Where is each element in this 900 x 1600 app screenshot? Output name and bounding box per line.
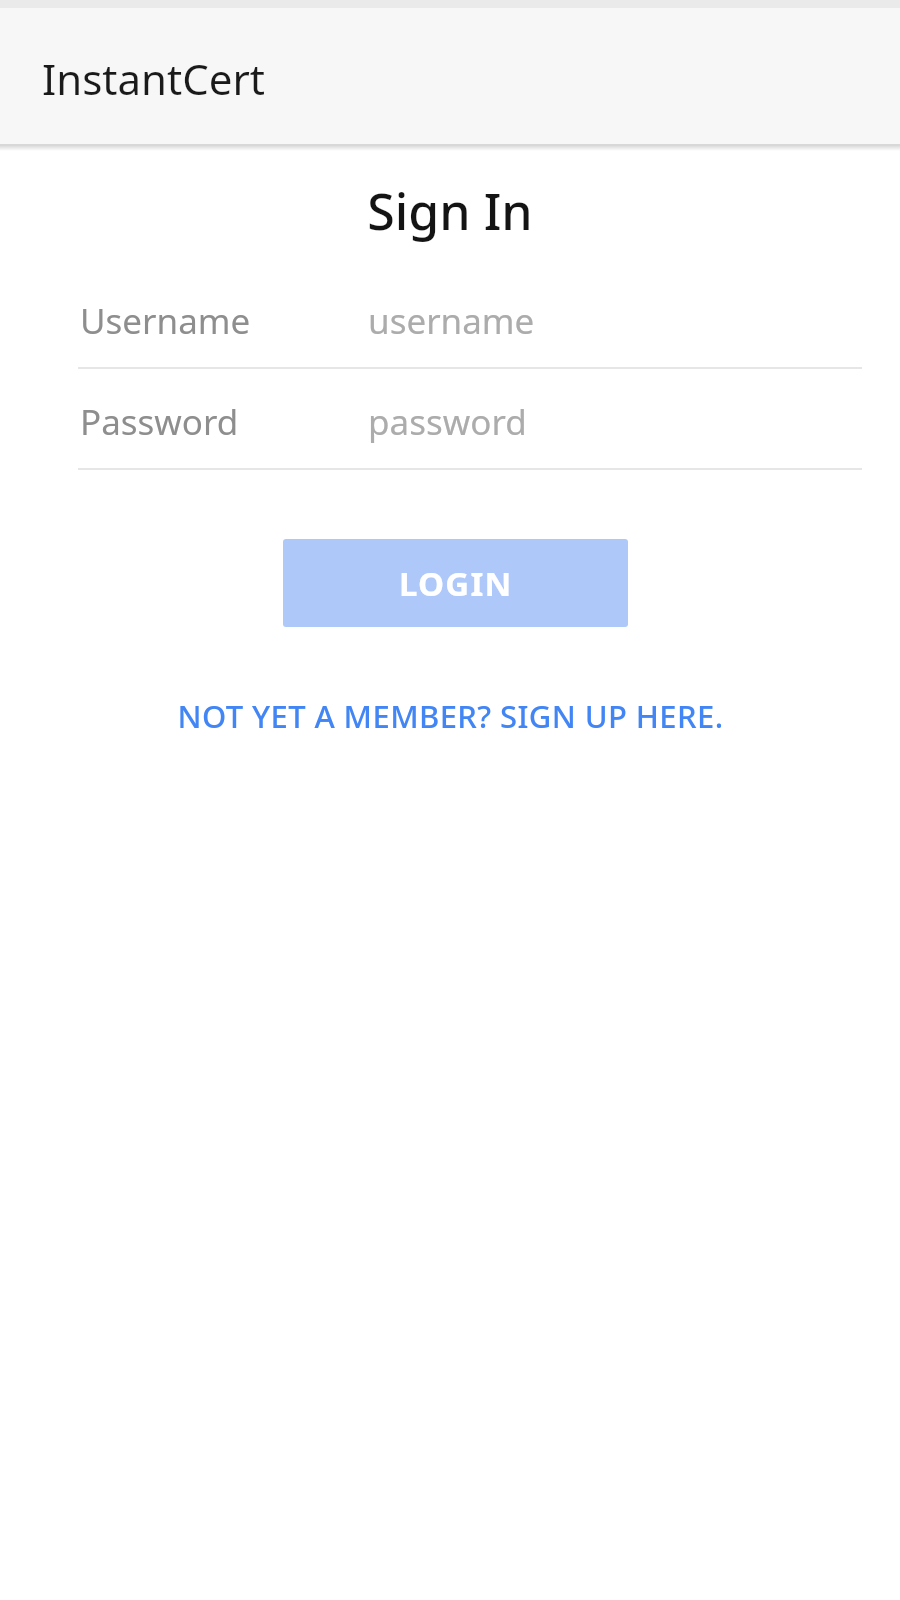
button[interactable]: LOGIN (283, 539, 628, 627)
button[interactable]: NOT YET A MEMBER? SIGN UP HERE. (0, 689, 900, 743)
staticText: InstantCert (42, 50, 265, 107)
staticText: username (368, 297, 535, 345)
staticText: password (368, 398, 527, 446)
staticText: NOT YET A MEMBER? SIGN UP HERE. (177, 695, 724, 737)
staticText: LOGIN (399, 561, 513, 606)
staticText: Password (80, 398, 368, 446)
button[interactable]: Username (80, 297, 862, 345)
button[interactable]: Password (80, 398, 862, 446)
staticText: Username (80, 297, 368, 345)
staticText: Sign In (0, 177, 900, 245)
